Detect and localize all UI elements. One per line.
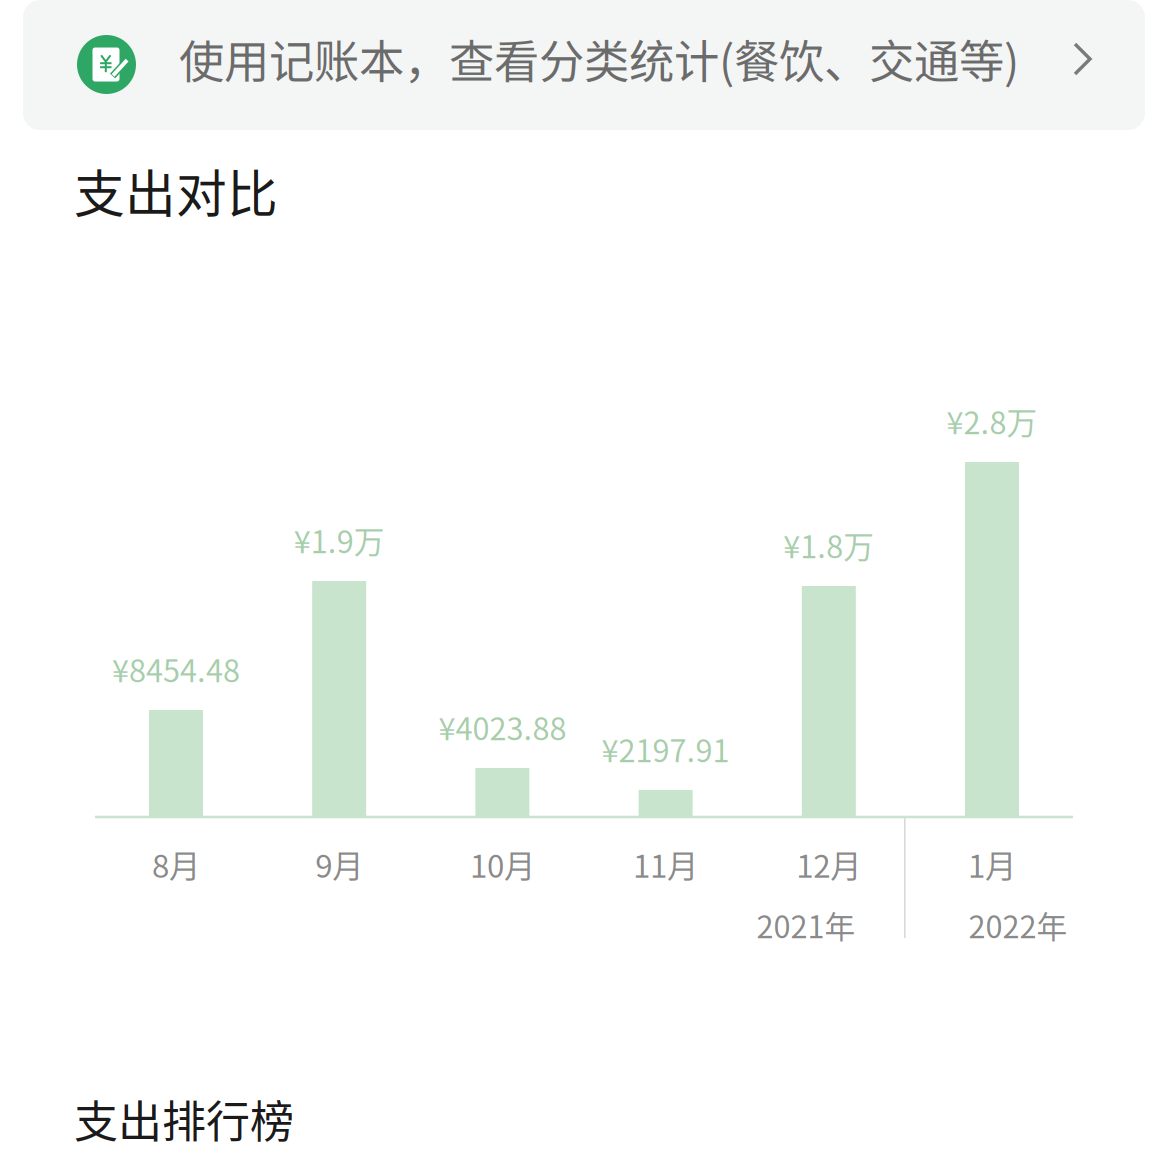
staticText: 支出对比	[74, 154, 278, 227]
button[interactable]: 使用记账本，查看分类统计(餐饮、交通等)	[23, 0, 1145, 130]
staticText: 12月	[796, 841, 861, 887]
staticText: 9月	[315, 841, 363, 887]
staticText: 1月	[968, 841, 1016, 887]
staticText: ¥2197.91	[602, 727, 730, 771]
staticText: ¥2.8万	[946, 399, 1037, 443]
staticText: 10月	[470, 841, 535, 887]
staticText: 11月	[633, 841, 698, 887]
staticText: 8月	[152, 841, 200, 887]
staticText: 支出排行榜	[74, 1087, 294, 1151]
staticText: 2022年	[968, 903, 1067, 947]
staticText: ¥4023.88	[438, 705, 566, 749]
staticText: ¥8454.48	[112, 647, 240, 691]
staticText: 2021年	[756, 903, 855, 947]
staticText: 使用记账本，查看分类统计(餐饮、交通等)	[179, 26, 1019, 92]
staticText: ¥1.8万	[783, 523, 874, 567]
staticText: ¥1.9万	[294, 518, 385, 562]
